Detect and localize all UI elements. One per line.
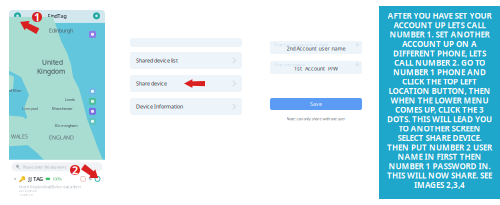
staticText: Edinburgh bbox=[49, 27, 73, 34]
button[interactable]: Navigate bbox=[88, 177, 92, 181]
staticText: COMES UP, CLICK THE 3 bbox=[395, 104, 484, 115]
staticText: NUMBER 1. SET ANOTHER bbox=[389, 29, 489, 40]
staticText: 100% bbox=[53, 176, 62, 181]
button[interactable]: Location bbox=[14, 12, 21, 19]
staticText: CLICK THE TOP LEFT bbox=[402, 76, 477, 87]
staticText: Manchester bbox=[52, 106, 73, 111]
staticText: Share device bbox=[136, 80, 167, 87]
staticText: NAME IN FIRST THEN bbox=[397, 151, 481, 162]
staticText: of Man bbox=[9, 88, 21, 93]
staticText: IMAGES 2,3,4 bbox=[414, 180, 465, 190]
staticText: Birmingham bbox=[55, 123, 78, 128]
button[interactable]: Shared device list bbox=[130, 52, 242, 69]
staticText: Device Information bbox=[136, 103, 183, 110]
staticText: DIFFERENT PHONE, LETS bbox=[393, 48, 486, 59]
staticText: Note: can only share with one user bbox=[286, 116, 345, 121]
staticText: WALES bbox=[11, 133, 28, 140]
staticText: ACCOUNT UP ON A bbox=[402, 39, 477, 49]
button[interactable]: Menu bbox=[93, 12, 100, 19]
staticText: DOTS. THIS WILL LEAD YOU bbox=[387, 114, 492, 124]
staticText: Save bbox=[310, 100, 322, 108]
staticText: NUMBER 1 PHONE AND bbox=[393, 67, 486, 77]
staticText: CALL NUMBER 2. GO TO bbox=[394, 57, 485, 68]
staticText: Please enter password bbox=[274, 63, 305, 67]
staticText: Please enter the account to be shared bbox=[274, 43, 328, 47]
staticText: LOCATION BUTTON, THEN bbox=[388, 86, 490, 96]
staticText: Please enter the tag name bbox=[22, 164, 66, 169]
staticText: FindTag bbox=[47, 12, 66, 19]
staticText: SELECT SHARE DEVICE. bbox=[397, 133, 481, 143]
button[interactable]: Device Information bbox=[130, 98, 242, 115]
staticText: 1 bbox=[34, 10, 40, 24]
staticText: United Kingdom,Road/Bolton road,xx Stree… bbox=[19, 185, 81, 192]
staticText: 10:48:10 bbox=[19, 193, 33, 196]
staticText: AFTER YOU HAVE SET YOUR bbox=[387, 10, 491, 21]
staticText: 2nd Account user name bbox=[286, 45, 345, 52]
staticText: THEN PUT NUMBER 2 USER bbox=[387, 142, 492, 153]
staticText: THIS WILL NOW SHARE. SEE bbox=[387, 170, 492, 181]
staticText: Leeds bbox=[65, 97, 75, 102]
staticText: ENGLAND bbox=[49, 134, 74, 141]
button[interactable]: Save bbox=[270, 98, 362, 110]
staticText: United bbox=[42, 58, 63, 67]
staticText: 🔑 bbox=[19, 176, 26, 182]
staticText: ACCOUNT UP LETS CALL bbox=[393, 20, 485, 30]
staticText: TO ANOTHER SCREEN bbox=[398, 123, 480, 134]
button[interactable]: Alert bbox=[81, 177, 85, 181]
staticText: Kingdom bbox=[37, 67, 65, 76]
staticText: NUMBER 1 PASSWORD IN. bbox=[388, 161, 490, 171]
staticText: WHEN THE LOWER MENU bbox=[390, 95, 488, 106]
staticText: Liverpool bbox=[22, 106, 38, 111]
button[interactable]: More bbox=[95, 176, 100, 181]
staticText: JJ TAG bbox=[28, 175, 43, 182]
staticText: Shared device list bbox=[136, 57, 178, 64]
button[interactable]: Share device bbox=[130, 75, 242, 92]
staticText: 1st Account P/W bbox=[294, 65, 338, 72]
staticText: 2 bbox=[72, 163, 78, 177]
